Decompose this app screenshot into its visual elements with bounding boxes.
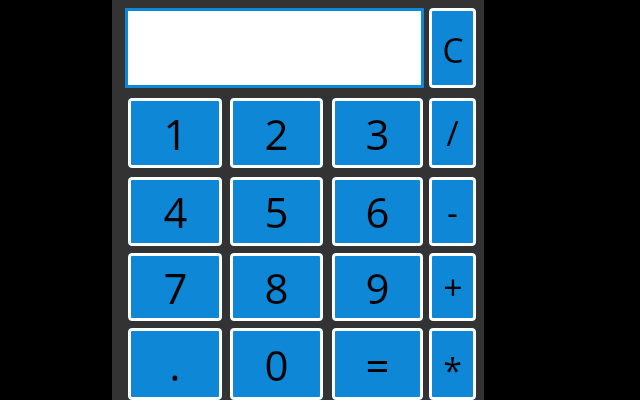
button[interactable] [125,8,424,88]
button[interactable]: 3 [332,98,423,168]
button[interactable]: . [128,328,222,400]
button[interactable]: 8 [230,253,323,321]
staticText: 7 [163,259,188,316]
staticText: 1 [163,105,188,162]
button[interactable]: 5 [230,177,323,246]
button[interactable]: 0 [230,328,323,400]
button[interactable]: 7 [128,253,222,321]
button[interactable]: 4 [128,177,222,246]
staticText: . [169,336,181,393]
staticText: + [443,264,463,310]
staticText: 5 [264,183,289,240]
button[interactable]: + [429,253,476,321]
staticText: * [443,347,462,393]
staticText: 6 [365,183,390,240]
staticText: = [365,336,390,393]
staticText: 4 [163,183,188,240]
staticText: - [447,189,458,235]
button[interactable]: = [332,328,423,400]
staticText: 0 [264,336,289,393]
button[interactable]: * [429,328,476,400]
staticText: 9 [365,259,390,316]
staticText: / [446,110,459,156]
button[interactable]: 1 [128,98,222,168]
button[interactable]: C [429,8,476,88]
staticText: 3 [365,105,390,162]
button[interactable]: / [429,98,476,168]
staticText: 8 [264,259,289,316]
button[interactable]: 2 [230,98,323,168]
button[interactable]: 6 [332,177,423,246]
staticText: C [442,27,464,73]
button[interactable]: 9 [332,253,423,321]
staticText: 2 [264,105,289,162]
button[interactable]: - [429,177,476,246]
